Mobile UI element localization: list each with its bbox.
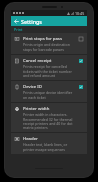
button[interactable]: Printer width [11, 103, 87, 132]
staticText: Prints unique device identifier on each … [23, 90, 77, 100]
staticText: Header [23, 135, 38, 141]
staticText: Cancel receipt [23, 57, 52, 63]
button[interactable]: Print stops for pass [77, 35, 85, 42]
staticText: Prints origin and destination stops for … [23, 42, 77, 52]
staticText: Header text, blank lines, or printer esc… [23, 142, 77, 152]
staticText: Device ID [23, 83, 42, 89]
button[interactable]: Cancel receipt [77, 57, 85, 64]
staticText: Prints receipt for cancelled tickets wit… [23, 64, 77, 78]
staticText: 10:45 [75, 11, 85, 16]
staticText: Printer width in characters. Recommended… [23, 112, 77, 130]
staticText: Printer width [23, 105, 50, 111]
button[interactable]: Print stops for pass [11, 33, 87, 54]
staticText: Print stops for pass [23, 35, 62, 41]
button[interactable]: Header [11, 133, 87, 154]
staticText: Print [14, 27, 23, 32]
button[interactable]: Navigate up [11, 16, 21, 26]
staticText: Settings [21, 18, 42, 25]
button[interactable]: Device ID [11, 81, 87, 102]
button[interactable]: Cancel receipt [11, 55, 87, 80]
button[interactable]: Device ID [77, 83, 85, 90]
